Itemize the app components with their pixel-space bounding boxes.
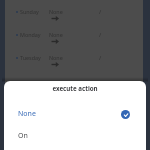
staticText: Tuesday bbox=[20, 54, 41, 61]
other: Next action bbox=[51, 60, 59, 68]
staticText: execute action bbox=[4, 84, 146, 92]
staticText: On bbox=[18, 131, 28, 141]
staticText: Sunday bbox=[20, 8, 39, 15]
button[interactable]: None bbox=[4, 103, 146, 125]
staticText: None bbox=[49, 54, 63, 61]
other: Selected bbox=[121, 110, 130, 119]
staticText: / bbox=[99, 31, 102, 39]
staticText: None bbox=[18, 109, 36, 119]
staticText: None bbox=[49, 31, 63, 38]
staticText: Monday bbox=[20, 31, 41, 38]
button[interactable]: Sunday bbox=[5, 0, 143, 150]
button[interactable]: On bbox=[4, 125, 146, 147]
staticText: / bbox=[99, 8, 102, 16]
other: Next action bbox=[51, 14, 59, 22]
staticText: None bbox=[49, 8, 63, 15]
other: Next action bbox=[51, 37, 59, 45]
staticText: / bbox=[99, 54, 102, 62]
